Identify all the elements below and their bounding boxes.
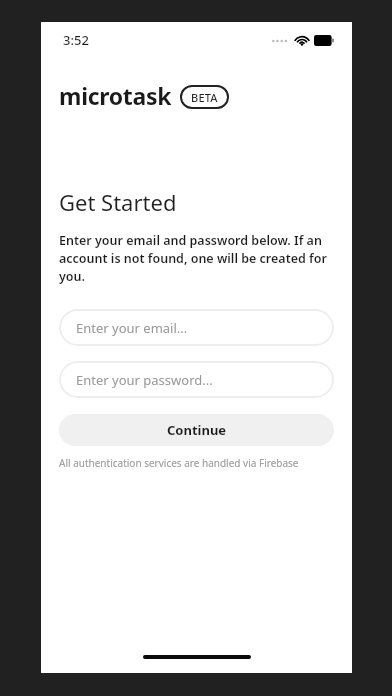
staticText: Enter your email... bbox=[76, 319, 188, 337]
button[interactable]: Enter your password... bbox=[59, 361, 334, 398]
staticText: All authentication services are handled … bbox=[59, 456, 299, 470]
other: Home indicator bbox=[143, 655, 251, 659]
staticText: 3:52 bbox=[63, 31, 89, 49]
button[interactable]: Continue bbox=[59, 414, 334, 446]
staticText: microtask bbox=[59, 80, 172, 111]
staticText: BETA bbox=[191, 90, 218, 105]
staticText: Continue bbox=[167, 421, 227, 439]
button[interactable]: Enter your email... bbox=[59, 309, 334, 346]
staticText: Enter your password... bbox=[76, 371, 213, 389]
staticText: Get Started bbox=[59, 187, 177, 217]
staticText: Enter your email and password below. If … bbox=[59, 232, 334, 285]
